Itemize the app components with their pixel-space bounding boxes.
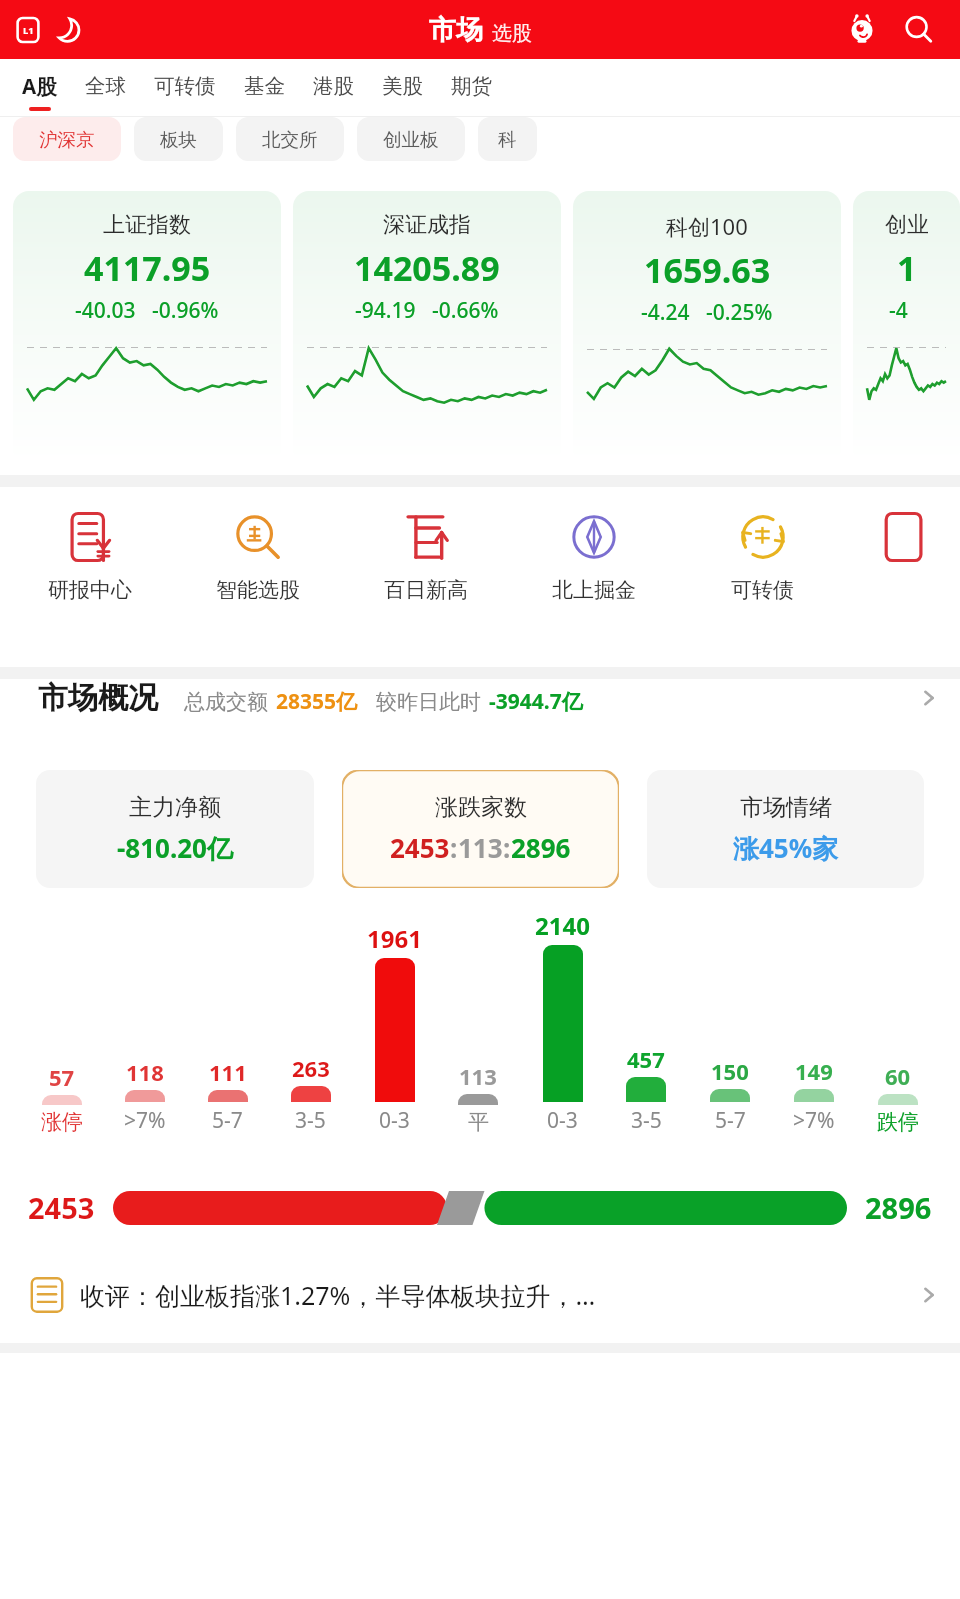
staticText: 沪深京 (39, 128, 95, 151)
staticText: 150 (711, 1056, 749, 1086)
button[interactable]: 可转债 (154, 59, 216, 117)
staticText: 1 (897, 245, 917, 291)
staticText: 可转债 (154, 73, 216, 99)
staticText: 118 (126, 1057, 164, 1087)
staticText: 科创100 (666, 211, 748, 241)
staticText: 美股 (382, 73, 423, 99)
staticText: 北上掘金 (552, 577, 636, 603)
staticText: 2140 (535, 909, 590, 942)
staticText: 板块 (160, 128, 197, 151)
staticText: 涨跌家数 (435, 793, 527, 822)
button[interactable]: Search (898, 9, 940, 51)
staticText: 北交所 (262, 128, 318, 151)
button[interactable]: 北交所 (236, 117, 344, 161)
staticText: 市场概况 (38, 679, 158, 717)
staticText: 研报中心 (48, 577, 132, 603)
staticText: >7% (793, 1106, 835, 1135)
button[interactable]: 百日新高 (342, 509, 510, 603)
staticText: 3-5 (631, 1106, 662, 1135)
staticText: 2896 (511, 830, 571, 865)
staticText: 60 (885, 1061, 911, 1091)
staticText: -4 (889, 296, 908, 325)
staticText: 智能选股 (216, 577, 300, 603)
staticText: 0-3 (547, 1106, 578, 1135)
staticText: 科 (498, 128, 517, 151)
staticText: -0.96% (152, 296, 219, 325)
staticText: 市场情绪 (740, 793, 832, 822)
staticText: 港股 (313, 73, 354, 99)
staticText: 涨45%家 (733, 830, 839, 866)
staticText: 14205.89 (354, 245, 500, 291)
staticText: 上证指数 (103, 211, 191, 239)
button[interactable]: Night mode (50, 13, 84, 47)
staticText: -94.19 (355, 296, 416, 325)
button[interactable]: 收评：创业板指涨1.27%，半导体板块拉升，… (0, 1247, 960, 1343)
staticText: 57 (49, 1062, 75, 1092)
staticText: 基金 (244, 73, 285, 99)
staticText: 全球 (85, 73, 126, 99)
button[interactable]: 市场情绪 (647, 770, 924, 888)
staticText: 2453 (28, 1188, 95, 1227)
staticText: -0.25% (706, 298, 773, 327)
staticText: 选股 (492, 21, 532, 46)
staticText: 总成交额 (184, 689, 268, 715)
staticText: 457 (627, 1044, 665, 1074)
staticText: 市场 (429, 13, 483, 47)
button[interactable]: A股 (22, 59, 57, 117)
staticText: 28355亿 (276, 687, 358, 716)
button[interactable]: 板块 (134, 117, 223, 161)
button[interactable]: 涨跌家数 (342, 770, 619, 888)
button[interactable]: 主力净额 (36, 770, 314, 888)
staticText: 收评：创业板指涨1.27%，半导体板块拉升，… (80, 1278, 596, 1312)
button[interactable]: 创业板 (357, 117, 465, 161)
button[interactable]: 期货 (451, 59, 492, 117)
staticText: 111 (209, 1057, 247, 1087)
button[interactable]: 科创100 (573, 191, 841, 463)
staticText: 2896 (865, 1188, 932, 1227)
staticText: -3944.7亿 (489, 687, 583, 716)
button[interactable]: 科 (478, 117, 537, 161)
staticText: : (503, 830, 511, 865)
staticText: 113 (459, 1061, 497, 1091)
button[interactable]: 美股 (382, 59, 423, 117)
staticText: 0-3 (379, 1106, 410, 1135)
staticText: 期货 (451, 73, 492, 99)
button[interactable]: Level 1 quotes (14, 16, 42, 44)
button[interactable]: More (846, 509, 960, 577)
staticText: 创业 (885, 211, 929, 239)
staticText: 1961 (367, 922, 422, 955)
staticText: 涨停 (41, 1109, 83, 1135)
staticText: 149 (795, 1056, 833, 1086)
staticText: -4.24 (641, 298, 690, 327)
button[interactable]: 港股 (313, 59, 354, 117)
staticText: 跌停 (877, 1109, 919, 1135)
staticText: L1 (23, 24, 34, 37)
staticText: 较昨日此时 (376, 689, 481, 715)
button[interactable]: 北上掘金 (510, 509, 678, 603)
staticText: 263 (292, 1053, 330, 1083)
staticText: >7% (124, 1106, 166, 1135)
button[interactable]: Assistant (842, 10, 882, 50)
staticText: 平 (468, 1109, 489, 1135)
staticText: -0.66% (432, 296, 499, 325)
staticText: A股 (22, 72, 57, 100)
staticText: -810.20亿 (117, 830, 233, 866)
button[interactable]: 全球 (85, 59, 126, 117)
button[interactable]: 研报中心 (6, 509, 174, 603)
button[interactable]: 上证指数 (13, 191, 281, 463)
button[interactable]: 创业 (853, 191, 960, 463)
button[interactable]: 可转债 (678, 509, 846, 603)
staticText: 可转债 (731, 577, 794, 603)
button[interactable]: 深证成指 (293, 191, 561, 463)
staticText: -40.03 (75, 296, 136, 325)
staticText: 3-5 (295, 1106, 326, 1135)
staticText: 创业板 (383, 128, 439, 151)
button[interactable]: 沪深京 (13, 117, 121, 161)
staticText: 2453 (390, 830, 450, 865)
staticText: 113 (458, 830, 503, 865)
staticText: 主力净额 (129, 793, 221, 822)
staticText: 5-7 (212, 1106, 243, 1135)
button[interactable]: 智能选股 (174, 509, 342, 603)
button[interactable]: 基金 (244, 59, 285, 117)
button[interactable]: 市场概况 (0, 679, 960, 761)
